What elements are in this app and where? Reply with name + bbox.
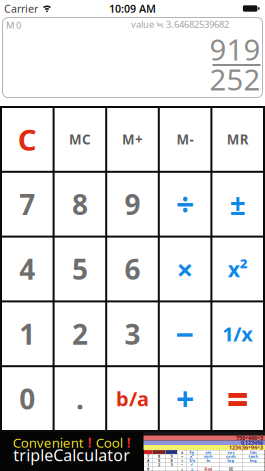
button[interactable]: b/a bbox=[107, 367, 158, 430]
staticText: 7 bbox=[147, 454, 149, 459]
staticText: sin bbox=[205, 449, 211, 455]
button[interactable]: tripleCalculator ad bbox=[0, 432, 265, 471]
staticText: 8 bbox=[72, 186, 88, 223]
staticText: x² bbox=[190, 454, 194, 459]
staticText: tan bbox=[250, 449, 257, 455]
staticText: log bbox=[227, 458, 234, 463]
button[interactable]: MR bbox=[212, 108, 263, 171]
staticText: 1 bbox=[147, 462, 149, 467]
staticText: 3 bbox=[170, 462, 172, 467]
staticText: − bbox=[176, 313, 195, 355]
button[interactable]: = bbox=[212, 367, 263, 430]
staticText: . bbox=[158, 466, 159, 471]
button[interactable]: + bbox=[160, 367, 210, 430]
button[interactable]: C bbox=[2, 108, 53, 171]
button[interactable]: M- bbox=[160, 108, 210, 171]
staticText: = bbox=[227, 374, 249, 423]
staticText: + bbox=[181, 466, 183, 471]
staticText: 10:09 AM bbox=[109, 1, 156, 16]
staticText: MC bbox=[69, 130, 91, 148]
staticText: 0.123456 bbox=[241, 439, 263, 446]
button[interactable]: ÷ bbox=[160, 173, 210, 236]
button[interactable]: 4 bbox=[2, 238, 53, 300]
staticText: EE bbox=[229, 466, 233, 471]
staticText: M 0 bbox=[6, 19, 21, 31]
button[interactable]: . bbox=[55, 367, 105, 430]
button[interactable]: 6 bbox=[107, 238, 158, 300]
staticText: ln bbox=[206, 458, 210, 463]
staticText: Cool bbox=[96, 434, 123, 451]
staticText: ± bbox=[191, 466, 193, 471]
staticText: sinh bbox=[204, 454, 213, 459]
staticText: C bbox=[18, 120, 37, 159]
staticText: × bbox=[181, 458, 183, 463]
button[interactable]: M+ bbox=[107, 108, 158, 171]
staticText: cosh bbox=[226, 454, 236, 459]
staticText: ÷ bbox=[181, 454, 183, 459]
button[interactable]: x² bbox=[212, 238, 263, 300]
staticText: x² bbox=[228, 255, 248, 283]
staticText: MR bbox=[227, 130, 249, 148]
staticText: M- bbox=[177, 130, 194, 148]
staticText: 5 bbox=[158, 458, 160, 463]
button[interactable]: − bbox=[160, 302, 210, 365]
staticText: Carrier bbox=[4, 1, 38, 16]
staticText: √ bbox=[190, 462, 193, 467]
staticText: 1 bbox=[19, 315, 35, 352]
button[interactable]: × bbox=[160, 238, 210, 300]
button[interactable]: 1 bbox=[2, 302, 53, 365]
staticText: 756+496+3 bbox=[236, 434, 263, 442]
staticText: Rad bbox=[204, 466, 212, 471]
staticText: . bbox=[76, 380, 84, 417]
button[interactable]: 9 bbox=[107, 173, 158, 236]
button[interactable]: 8 bbox=[55, 173, 105, 236]
button[interactable]: 1/x bbox=[212, 302, 263, 365]
staticText: M+ bbox=[122, 130, 143, 148]
staticText: x bbox=[181, 449, 183, 455]
button[interactable]: ± bbox=[212, 173, 263, 236]
staticText: tanh bbox=[248, 454, 258, 459]
staticText: 7 bbox=[19, 186, 35, 223]
staticText: 252 bbox=[209, 59, 260, 98]
staticText: 5 bbox=[72, 250, 88, 288]
staticText: cos bbox=[227, 449, 234, 455]
staticText: Fn bbox=[189, 449, 194, 455]
button[interactable]: 2 bbox=[55, 302, 105, 365]
staticText: 1/x bbox=[222, 320, 253, 347]
staticText: 0 bbox=[19, 380, 35, 417]
button[interactable]: 5 bbox=[55, 238, 105, 300]
staticText: 6 bbox=[170, 458, 172, 463]
staticText: 6 bbox=[124, 250, 140, 288]
staticText: 2 bbox=[72, 315, 88, 352]
staticText: ! bbox=[127, 434, 131, 451]
staticText: value ≒ 3.64682539682 bbox=[131, 18, 229, 30]
button[interactable]: 7 bbox=[2, 173, 53, 236]
staticText: 1234.56+94^3 bbox=[229, 444, 263, 451]
staticText: × bbox=[177, 249, 194, 288]
staticText: 2 bbox=[158, 462, 160, 467]
staticText: + bbox=[176, 377, 194, 420]
staticText: 1/x bbox=[189, 458, 195, 463]
button[interactable]: 0 bbox=[2, 367, 53, 430]
staticText: 9 bbox=[124, 186, 140, 223]
staticText: b/a bbox=[116, 385, 149, 412]
staticText: 919 bbox=[209, 29, 260, 68]
staticText: ! bbox=[88, 434, 92, 451]
button[interactable]: 3 bbox=[107, 302, 158, 365]
staticText: ÷ bbox=[176, 183, 194, 225]
staticText: ± bbox=[230, 186, 246, 223]
staticText: 0 bbox=[147, 466, 149, 471]
button[interactable]: MC bbox=[55, 108, 105, 171]
staticText: 8 bbox=[158, 454, 160, 459]
staticText: lng bbox=[250, 458, 257, 463]
staticText: 4 bbox=[19, 250, 35, 288]
staticText: tripleCalculator bbox=[13, 444, 130, 466]
staticText: − bbox=[181, 462, 183, 467]
staticText: 3 bbox=[124, 315, 140, 352]
staticText: Convenient bbox=[13, 434, 84, 451]
staticText: 4 bbox=[147, 458, 149, 463]
staticText: 9 bbox=[170, 454, 172, 459]
